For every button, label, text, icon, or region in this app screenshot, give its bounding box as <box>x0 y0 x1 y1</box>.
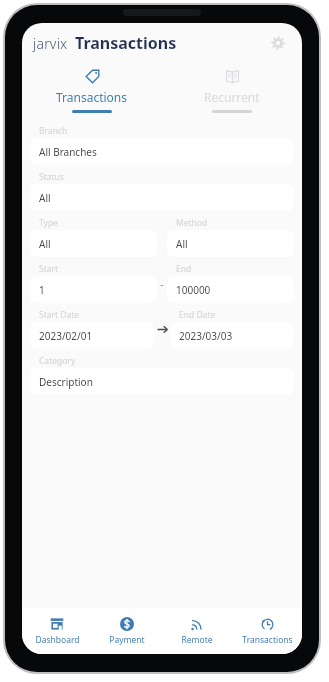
staticText: Status <box>39 171 64 183</box>
staticText: 100000 <box>176 283 211 297</box>
staticText: Recurrent <box>204 89 260 105</box>
staticText: 1 <box>39 283 45 297</box>
button[interactable]: All <box>30 230 157 257</box>
staticText: - <box>160 276 164 291</box>
button[interactable]: Recurrent <box>162 63 302 119</box>
button[interactable]: Description <box>30 368 294 395</box>
staticText: All <box>39 191 51 205</box>
staticText: Start Date <box>39 309 80 321</box>
button[interactable]: Payment <box>92 608 162 654</box>
staticText: End <box>176 263 192 275</box>
button[interactable]: 2023/03/03 <box>170 322 294 349</box>
staticText: Description <box>39 375 93 389</box>
button[interactable]: All <box>167 230 294 257</box>
staticText: All <box>176 237 188 251</box>
button[interactable]: Transactions <box>22 63 162 119</box>
button[interactable]: All <box>30 184 294 211</box>
staticText: Payment <box>109 634 145 646</box>
staticText: Branch <box>39 125 68 137</box>
staticText: Transactions <box>75 32 177 54</box>
button[interactable]: 1 <box>30 276 157 303</box>
staticText: Dashboard <box>35 634 80 646</box>
staticText: jarvix <box>33 34 68 53</box>
staticText: 2023/03/03 <box>179 329 233 343</box>
staticText: Transactions <box>56 89 128 105</box>
button[interactable]: All Branches <box>30 138 294 165</box>
button[interactable]: Transactions <box>232 608 302 654</box>
staticText: Transactions <box>242 634 293 646</box>
staticText: 2023/02/01 <box>39 329 93 343</box>
button[interactable]: Dashboard <box>22 608 92 654</box>
staticText: All <box>39 237 51 251</box>
button[interactable]: Remote <box>162 608 232 654</box>
button[interactable]: Settings <box>265 30 291 56</box>
staticText: End Date <box>179 309 216 321</box>
staticText: Type <box>39 217 58 229</box>
staticText: All Branches <box>39 145 97 159</box>
staticText: Remote <box>181 634 213 646</box>
staticText: Method <box>176 217 208 229</box>
staticText: Start <box>39 263 59 275</box>
button[interactable]: 100000 <box>167 276 294 303</box>
button[interactable]: 2023/02/01 <box>30 322 154 349</box>
staticText: Category <box>39 355 76 367</box>
